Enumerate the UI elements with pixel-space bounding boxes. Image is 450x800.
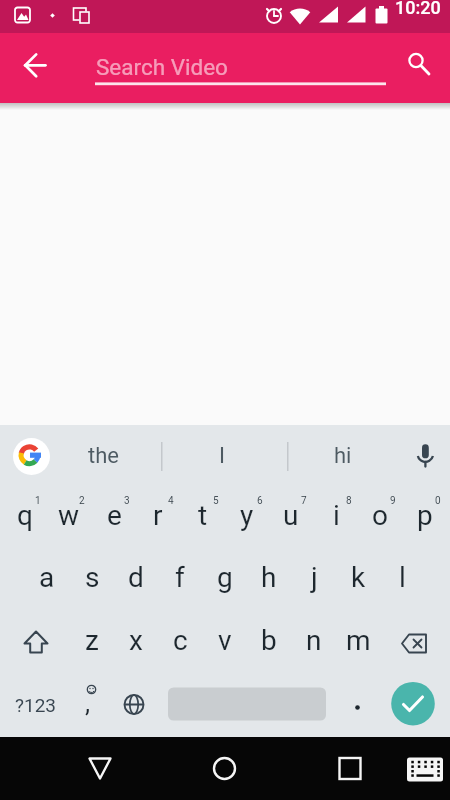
- staticText: a: [39, 561, 55, 594]
- button[interactable]: [390, 681, 436, 727]
- button[interactable]: u: [269, 484, 313, 546]
- staticText: 9: [390, 495, 396, 507]
- button[interactable]: a: [25, 546, 69, 608]
- button[interactable]: [168, 687, 326, 721]
- button[interactable]: h: [247, 546, 291, 608]
- button[interactable]: j: [292, 546, 336, 608]
- button[interactable]: [195, 739, 255, 799]
- staticText: m: [346, 624, 371, 657]
- staticText: h: [261, 561, 277, 594]
- button[interactable]: I: [167, 426, 277, 486]
- staticText: s: [85, 561, 100, 594]
- button[interactable]: [403, 745, 449, 793]
- staticText: f: [175, 561, 185, 594]
- staticText: I: [219, 443, 225, 469]
- staticText: j: [311, 561, 318, 594]
- button[interactable]: f: [158, 546, 202, 608]
- button[interactable]: [113, 674, 157, 736]
- staticText: 10:20: [395, 0, 441, 18]
- staticText: p: [417, 499, 433, 532]
- staticText: i: [333, 499, 340, 532]
- button[interactable]: n: [292, 609, 336, 671]
- button[interactable]: o: [358, 484, 402, 546]
- button[interactable]: [401, 431, 449, 481]
- staticText: w: [58, 499, 80, 532]
- button[interactable]: l: [380, 546, 424, 608]
- button[interactable]: p: [403, 484, 447, 546]
- button[interactable]: [70, 739, 130, 799]
- button[interactable]: the: [53, 426, 153, 486]
- button[interactable]: z: [70, 609, 114, 671]
- staticText: 1: [35, 495, 41, 507]
- button[interactable]: [392, 36, 440, 84]
- staticText: r: [153, 499, 163, 532]
- staticText: u: [283, 499, 299, 532]
- button[interactable]: k: [336, 546, 380, 608]
- staticText: 6: [257, 495, 263, 507]
- button[interactable]: y: [225, 484, 269, 546]
- staticText: hi: [334, 443, 352, 469]
- button[interactable]: hi: [293, 426, 393, 486]
- staticText: v: [218, 624, 232, 657]
- button[interactable]: g: [203, 546, 247, 608]
- button[interactable]: [80, 40, 390, 96]
- staticText: ?123: [15, 694, 57, 716]
- staticText: t: [198, 499, 208, 532]
- button[interactable]: [335, 674, 380, 736]
- staticText: y: [240, 499, 254, 532]
- button[interactable]: [381, 612, 447, 674]
- staticText: b: [261, 624, 277, 657]
- button[interactable]: [3, 612, 69, 674]
- button[interactable]: t: [181, 484, 225, 546]
- button[interactable]: s: [70, 546, 114, 608]
- staticText: ,: [85, 688, 91, 718]
- staticText: n: [306, 624, 322, 657]
- staticText: d: [128, 561, 144, 594]
- button[interactable]: ?123: [6, 674, 66, 736]
- button[interactable]: w: [47, 484, 91, 546]
- staticText: z: [85, 624, 99, 657]
- staticText: the: [88, 443, 119, 469]
- staticText: k: [351, 561, 366, 594]
- button[interactable]: [69, 674, 113, 736]
- button[interactable]: q: [3, 484, 47, 546]
- staticText: 2: [79, 495, 85, 507]
- staticText: 7: [301, 495, 307, 507]
- staticText: 5: [213, 495, 219, 507]
- button[interactable]: e: [92, 484, 136, 546]
- staticText: 3: [124, 495, 130, 507]
- button[interactable]: [10, 435, 53, 478]
- staticText: l: [399, 561, 406, 594]
- button[interactable]: r: [136, 484, 180, 546]
- button[interactable]: c: [158, 609, 202, 671]
- staticText: o: [372, 499, 388, 532]
- staticText: x: [129, 624, 143, 657]
- button[interactable]: d: [114, 546, 158, 608]
- button[interactable]: [320, 739, 380, 799]
- button[interactable]: i: [314, 484, 358, 546]
- button[interactable]: b: [247, 609, 291, 671]
- staticText: c: [173, 624, 188, 657]
- button[interactable]: x: [114, 609, 158, 671]
- staticText: 4: [168, 495, 174, 507]
- staticText: 0: [435, 495, 441, 507]
- staticText: g: [217, 561, 233, 594]
- staticText: e: [107, 499, 122, 532]
- button[interactable]: m: [336, 609, 380, 671]
- button[interactable]: [13, 42, 61, 90]
- staticText: 8: [346, 495, 352, 507]
- button[interactable]: v: [203, 609, 247, 671]
- staticText: Search Video: [96, 54, 228, 80]
- staticText: q: [17, 499, 33, 532]
